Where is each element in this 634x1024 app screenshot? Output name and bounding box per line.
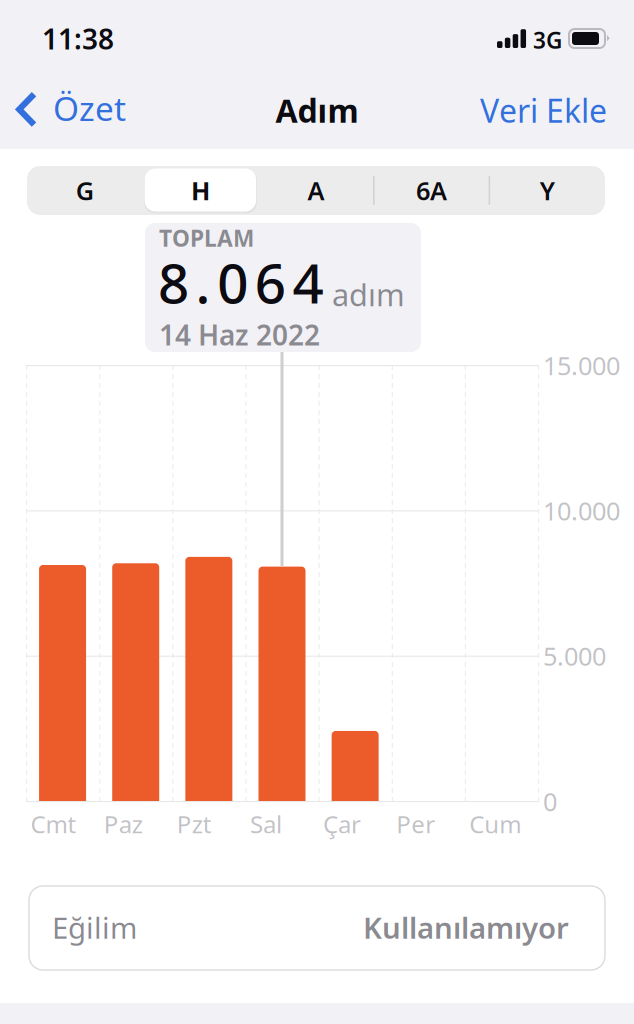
staticText: Veri Ekle bbox=[480, 89, 607, 131]
staticText: 14 Haz 2022 bbox=[159, 316, 320, 353]
staticText: 11:38 bbox=[42, 20, 114, 57]
staticText: Çar bbox=[323, 808, 361, 840]
staticText: adım bbox=[332, 274, 405, 315]
staticText: G bbox=[76, 174, 94, 207]
button[interactable]: 6A bbox=[374, 166, 489, 215]
staticText: 0 bbox=[543, 784, 557, 818]
staticText: Adım bbox=[275, 89, 358, 131]
staticText: 10.000 bbox=[543, 494, 620, 527]
button[interactable]: H bbox=[143, 166, 258, 215]
staticText: Kullanılamıyor bbox=[363, 908, 569, 947]
staticText: Y bbox=[540, 174, 555, 207]
staticText: Paz bbox=[104, 808, 143, 840]
button[interactable]: Y bbox=[489, 166, 605, 215]
staticText: Pzt bbox=[177, 808, 212, 840]
button[interactable]: Veri Ekle bbox=[471, 80, 617, 138]
button[interactable]: Özet bbox=[2, 80, 130, 138]
staticText: Cum bbox=[469, 808, 521, 840]
button[interactable]: G bbox=[27, 166, 143, 215]
staticText: 5.000 bbox=[543, 639, 606, 673]
staticText: Özet bbox=[53, 86, 126, 130]
staticText: Sal bbox=[250, 808, 282, 840]
staticText: 15.000 bbox=[543, 348, 620, 382]
staticText: Per bbox=[396, 808, 435, 840]
staticText: 6A bbox=[416, 174, 447, 207]
staticText: TOPLAM bbox=[159, 223, 254, 253]
button[interactable]: A bbox=[258, 166, 374, 215]
button[interactable]: Eğilim bbox=[29, 886, 605, 970]
staticText: A bbox=[307, 174, 324, 207]
staticText: H bbox=[191, 174, 210, 207]
staticText: Cmt bbox=[30, 808, 76, 840]
staticText: Eğilim bbox=[52, 908, 137, 947]
staticText: 3G bbox=[533, 25, 562, 55]
staticText: 8.064 bbox=[158, 246, 344, 319]
